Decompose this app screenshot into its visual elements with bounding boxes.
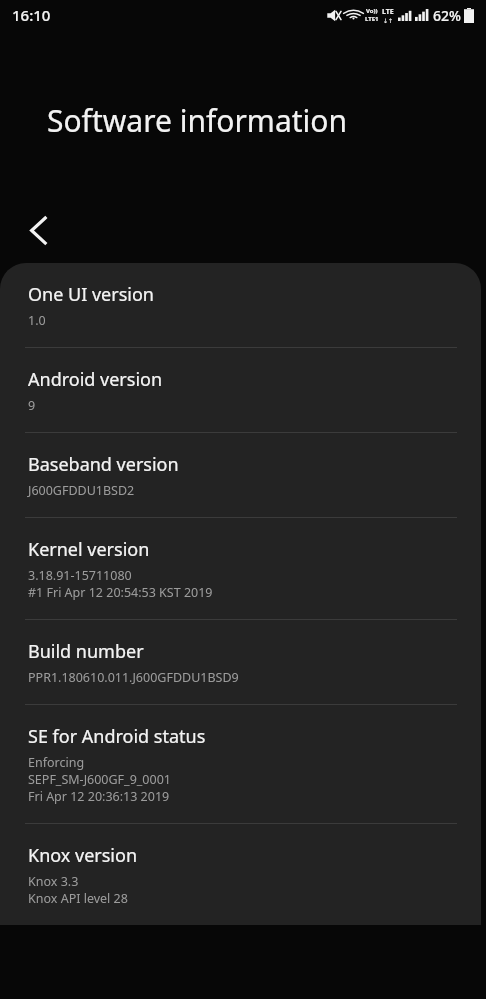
staticText: 16:10 xyxy=(12,5,51,25)
staticText: Enforcing xyxy=(28,754,85,771)
button[interactable]: Knox version xyxy=(0,824,481,925)
staticText: Knox 3.3 xyxy=(28,873,79,890)
button[interactable]: Build number xyxy=(0,620,481,705)
button[interactable]: Back xyxy=(18,210,58,250)
staticText: 62% xyxy=(433,6,461,25)
staticText: Kernel version xyxy=(28,537,150,562)
button[interactable]: One UI version xyxy=(0,263,481,348)
staticText: 9 xyxy=(28,397,36,414)
staticText: SE for Android status xyxy=(28,724,206,749)
staticText: LTE1 xyxy=(365,15,379,23)
staticText: One UI version xyxy=(28,282,154,307)
staticText: PPR1.180610.011.J600GFDDU1BSD9 xyxy=(28,669,239,686)
staticText: Baseband version xyxy=(28,452,179,477)
staticText: SEPF_SM-J600GF_9_0001 xyxy=(28,771,171,788)
staticText: Knox version xyxy=(28,843,138,868)
staticText: Vo)) xyxy=(366,7,378,15)
staticText: Build number xyxy=(28,639,144,664)
staticText: ↓↑ xyxy=(383,17,394,24)
staticText: Fri Apr 12 20:36:13 2019 xyxy=(28,788,170,805)
staticText: 1.0 xyxy=(28,312,46,329)
staticText: #1 Fri Apr 12 20:54:53 KST 2019 xyxy=(28,584,213,601)
button[interactable]: SE for Android status xyxy=(0,705,481,824)
button[interactable]: Baseband version xyxy=(0,433,481,518)
staticText: Knox API level 28 xyxy=(28,890,128,907)
staticText: J600GFDDU1BSD2 xyxy=(28,482,135,499)
button[interactable]: Android version xyxy=(0,348,481,433)
staticText: Software information xyxy=(47,100,347,141)
staticText: LTE xyxy=(382,7,394,17)
staticText: 3.18.91-15711080 xyxy=(28,567,132,584)
button[interactable]: Kernel version xyxy=(0,518,481,620)
staticText: Android version xyxy=(28,367,163,392)
